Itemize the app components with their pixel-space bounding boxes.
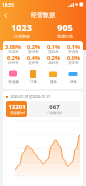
staticText: 营业额(元) (10, 111, 25, 115)
button[interactable]: 905 (43, 21, 86, 38)
button[interactable]: 0.0% (63, 54, 83, 65)
staticText: 经营数据 (31, 11, 55, 19)
staticText: 0.1% (47, 43, 60, 50)
button[interactable]: 3.08% (3, 43, 23, 54)
staticText: 退款率 (48, 50, 59, 54)
staticText: 完成率 (8, 50, 19, 54)
staticText: 0.2% (27, 43, 40, 50)
staticText: 18:55 (2, 2, 14, 8)
button[interactable]: 6.2% (3, 54, 23, 65)
staticText: 异常率 (68, 61, 79, 65)
staticText: 超时率 (48, 61, 59, 65)
staticText: 完成订单 (57, 34, 73, 38)
button[interactable]: 订单 (23, 69, 43, 84)
button[interactable]: 1023 (0, 21, 43, 38)
button[interactable]: Back (0, 10, 11, 21)
staticText: 1023 (11, 21, 32, 33)
staticText: 0.0% (67, 54, 80, 61)
button[interactable]: 667 (29, 101, 80, 117)
button[interactable]: 0.1% (63, 43, 83, 54)
button[interactable]: 0.2% (23, 43, 43, 54)
staticText: 订单数(单) (47, 111, 62, 115)
button[interactable]: 0.1% (43, 43, 63, 54)
staticText: 取消率 (28, 50, 39, 54)
button[interactable]: 营业额 (3, 69, 23, 84)
staticText: 好评率 (8, 61, 19, 65)
button[interactable]: 12201 (6, 101, 27, 117)
button[interactable]: 退款 (43, 69, 63, 84)
staticText: 订单 (30, 80, 37, 84)
staticText: 905 (57, 21, 73, 33)
staticText: 3.08% (5, 43, 21, 50)
staticText: 0.4% (27, 54, 40, 61)
staticText: 2020-01-01至2020-01-31 (10, 94, 51, 99)
staticText: 投诉率 (68, 50, 79, 54)
staticText: 差评率 (28, 61, 39, 65)
staticText: 6.2% (7, 54, 20, 61)
staticText: 0.2% (47, 54, 60, 61)
button[interactable]: 评价 (63, 69, 83, 84)
staticText: 评价 (70, 80, 77, 84)
staticText: 12201 (8, 103, 26, 111)
staticText: 营业额 (8, 80, 19, 84)
button[interactable]: 0.4% (23, 54, 43, 65)
staticText: 订单数量 (14, 34, 30, 38)
staticText: 667 (49, 103, 60, 111)
staticText: 退款 (50, 80, 57, 84)
staticText: 0.1% (67, 43, 80, 50)
button[interactable]: 0.2% (43, 54, 63, 65)
